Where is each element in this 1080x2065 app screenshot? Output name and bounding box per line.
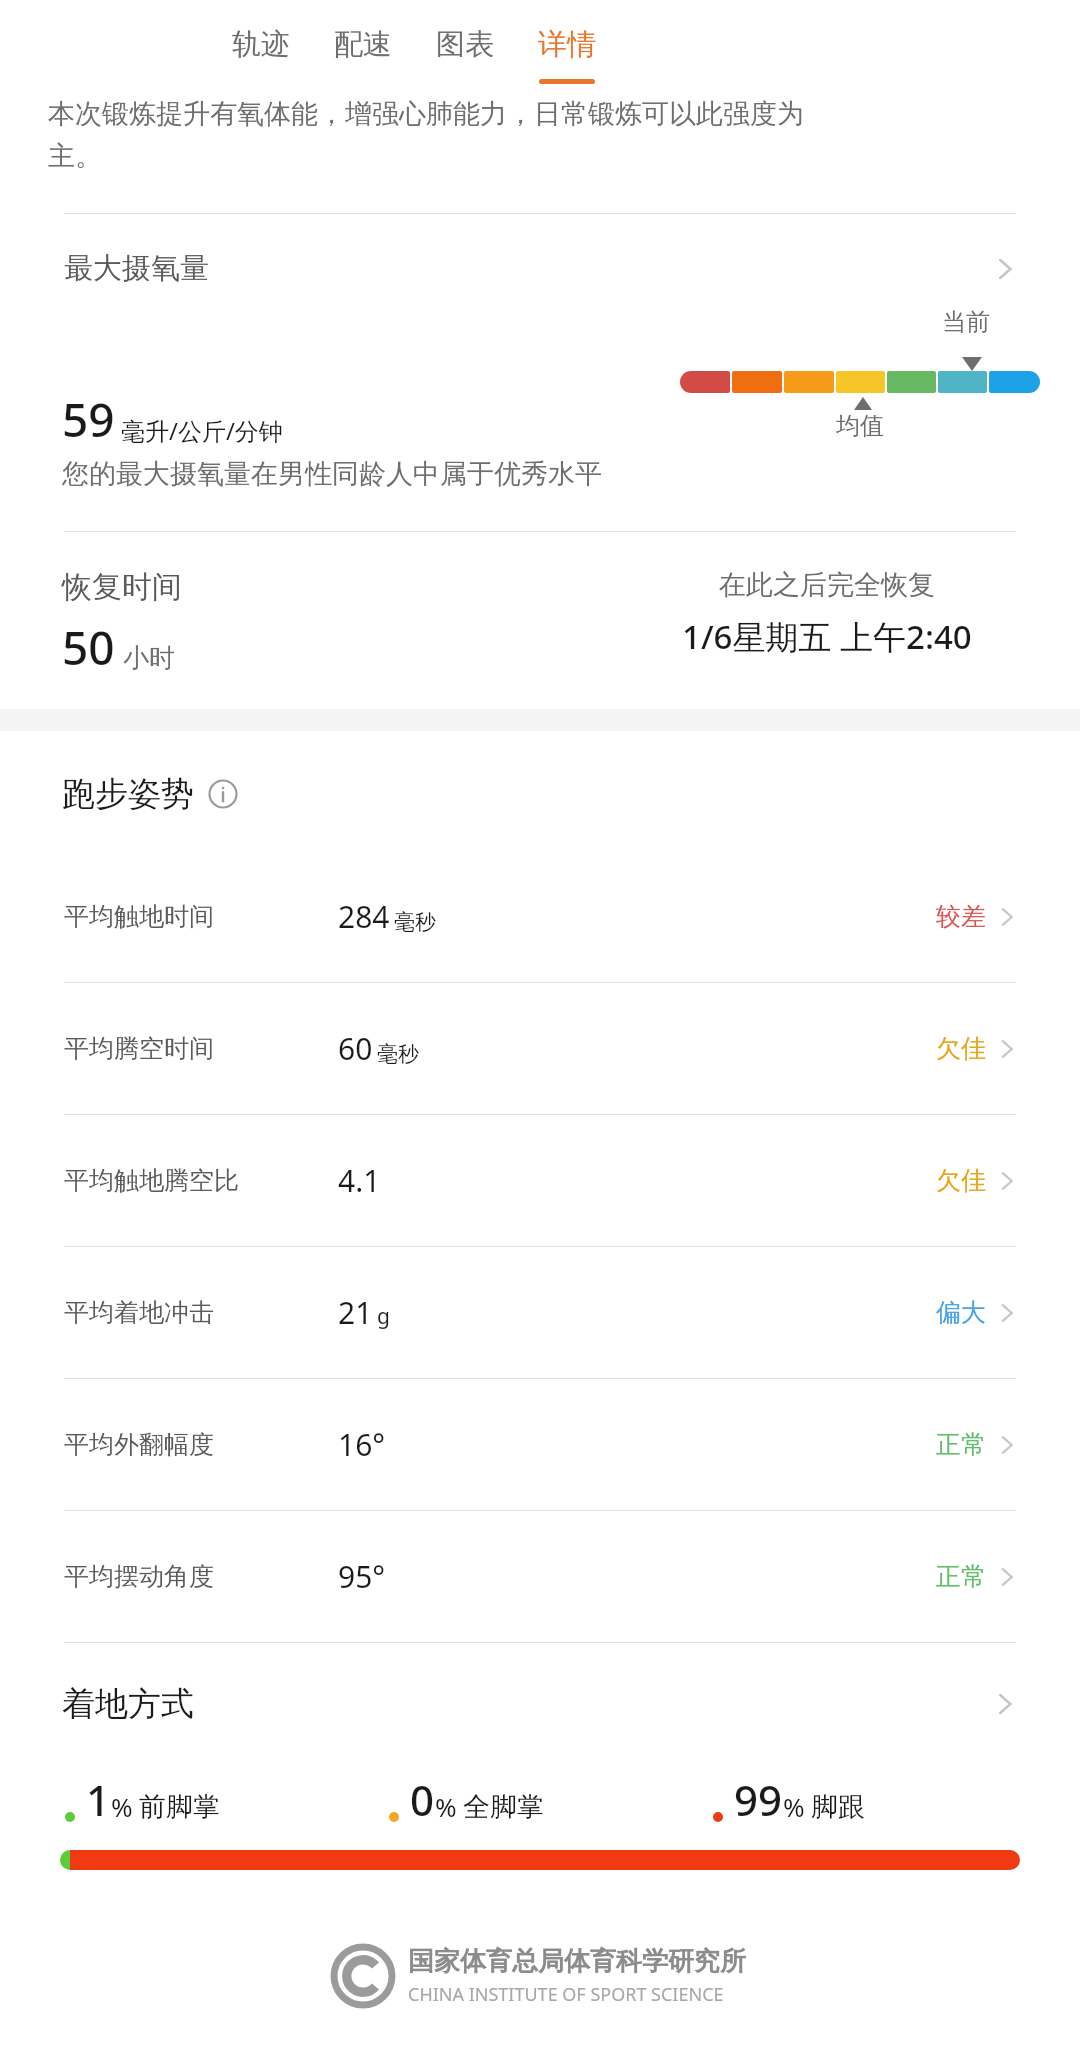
staticText: 平均腾空时间 (64, 1033, 314, 1064)
staticText: 图表 (436, 26, 494, 63)
staticText: 小时 (123, 642, 175, 675)
staticText: 平均着地冲击 (64, 1297, 314, 1328)
staticText: 轨迹 (232, 26, 290, 63)
staticText: 欠佳 (936, 1033, 986, 1064)
button[interactable]: 平均腾空时间 (0, 983, 1080, 1114)
staticText: 您的最大摄氧量在男性同龄人中属于优秀水平 (62, 457, 602, 491)
button[interactable]: 跑步姿势 (0, 731, 1080, 851)
staticText: 着地方式 (62, 1683, 990, 1725)
other: 信息 (208, 779, 238, 809)
button[interactable]: 配速 (312, 20, 414, 69)
staticText: 脚跟 (811, 1790, 865, 1824)
staticText: 99 (734, 1771, 783, 1828)
staticText: 毫秒 (394, 909, 436, 935)
button[interactable]: 着地方式 (0, 1643, 1080, 1745)
staticText: 16° (338, 1424, 386, 1465)
staticText: 50 (62, 616, 115, 679)
button[interactable]: 平均触地腾空比 (0, 1115, 1080, 1246)
staticText: 偏大 (936, 1297, 986, 1328)
staticText: 平均触地时间 (64, 901, 314, 932)
button[interactable]: 轨迹 (210, 20, 312, 69)
staticText: 均值 (836, 411, 884, 441)
staticText: 平均外翻幅度 (64, 1429, 314, 1460)
staticText: 59 (62, 388, 115, 451)
button[interactable]: 平均外翻幅度 (0, 1379, 1080, 1510)
staticText: 95° (338, 1556, 386, 1597)
button[interactable]: 详情 (516, 20, 618, 90)
staticText: 配速 (334, 26, 392, 63)
button[interactable]: 图表 (414, 20, 516, 69)
staticText: 毫升/公斤/分钟 (121, 414, 283, 447)
button[interactable]: 平均触地时间 (0, 851, 1080, 982)
staticText: % (783, 1789, 805, 1824)
staticText: 主。 (48, 139, 102, 173)
button[interactable]: 平均摆动角度 (0, 1511, 1080, 1642)
staticText: 较差 (936, 901, 986, 932)
button[interactable]: 平均着地冲击 (0, 1247, 1080, 1378)
staticText: 21 (338, 1292, 373, 1333)
staticText: 平均摆动角度 (64, 1561, 314, 1592)
staticText: 全脚掌 (463, 1790, 544, 1824)
staticText: 284 (338, 896, 390, 937)
staticText: 0 (410, 1771, 435, 1828)
staticText: 本次锻炼提升有氧体能，增强心肺能力，日常锻炼可以此强度为 (48, 97, 804, 131)
staticText: % (435, 1789, 457, 1824)
staticText: 跑步姿势 (62, 773, 194, 815)
staticText: CHINA INSTITUTE OF SPORT SCIENCE (408, 1982, 724, 2007)
staticText: 在此之后完全恢复 (719, 568, 935, 602)
staticText: 正常 (936, 1561, 986, 1592)
staticText: 前脚掌 (139, 1790, 220, 1824)
staticText: 正常 (936, 1429, 986, 1460)
button[interactable]: 最大摄氧量 (0, 214, 1080, 297)
staticText: % (111, 1789, 133, 1824)
staticText: 最大摄氧量 (64, 250, 990, 287)
staticText: 1/6星期五 上午2:40 (682, 614, 972, 659)
staticText: 详情 (538, 26, 596, 63)
staticText: 恢复时间 (62, 568, 182, 606)
staticText: g (377, 1302, 390, 1331)
staticText: 毫秒 (377, 1041, 419, 1067)
staticText: 平均触地腾空比 (64, 1165, 314, 1196)
staticText: 当前 (942, 307, 990, 337)
staticText: 1 (86, 1771, 111, 1828)
staticText: 国家体育总局体育科学研究所 (408, 1945, 746, 1978)
staticText: 欠佳 (936, 1165, 986, 1196)
staticText: 4.1 (338, 1160, 381, 1201)
staticText: 60 (338, 1028, 373, 1069)
